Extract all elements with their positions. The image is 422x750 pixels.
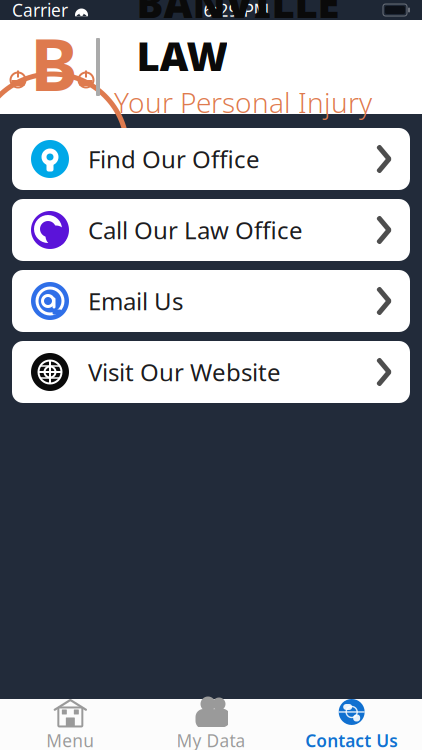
staticText: Menu xyxy=(46,729,94,750)
button[interactable]: Contact Us xyxy=(281,699,422,750)
button[interactable]: Email Us xyxy=(12,270,410,332)
button[interactable]: Find Our Office xyxy=(12,128,410,190)
button[interactable]: Visit Our Website xyxy=(12,341,410,403)
button[interactable]: Menu xyxy=(0,699,141,750)
staticText: Carrier xyxy=(12,0,68,21)
staticText: Contact Us xyxy=(305,729,398,750)
staticText: Your Personal Injury Attorneys xyxy=(114,83,372,158)
staticText: Find Our Office xyxy=(88,143,260,175)
button[interactable]: My Data xyxy=(141,699,281,750)
staticText: Visit Our Website xyxy=(88,356,281,388)
staticText: BANVILLE LAW xyxy=(136,0,349,82)
staticText: B xyxy=(30,15,78,111)
staticText: My Data xyxy=(176,729,245,750)
button[interactable]: Call Our Law Office xyxy=(12,199,410,261)
staticText: Email Us xyxy=(88,285,183,317)
staticText: 6:29 PM xyxy=(203,0,269,21)
staticText: Call Our Law Office xyxy=(88,214,303,246)
